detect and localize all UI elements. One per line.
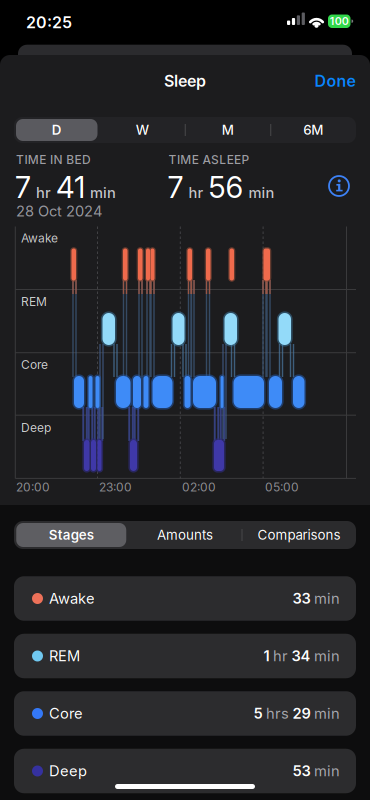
staticText: Awake	[21, 231, 58, 245]
staticText: 5	[253, 705, 262, 722]
button[interactable]: Comparisons	[242, 521, 356, 549]
staticText: TIME ASLEEP	[168, 152, 249, 167]
staticText: Sleep	[164, 72, 206, 90]
button[interactable]: REM	[14, 634, 356, 678]
staticText: Deep	[49, 762, 87, 780]
staticText: Done	[314, 72, 355, 90]
staticText: TIME IN BED	[16, 152, 91, 167]
staticText: 34	[291, 647, 310, 665]
staticText: hr	[36, 184, 51, 201]
staticText: 41	[56, 170, 85, 205]
button[interactable]: W	[99, 117, 185, 143]
staticText: 53	[292, 762, 310, 780]
staticText: min	[314, 647, 340, 665]
staticText: Comparisons	[257, 527, 340, 543]
staticText: D	[52, 122, 62, 138]
button[interactable]: 6M	[270, 117, 356, 143]
staticText: hrs	[266, 705, 289, 722]
staticText: hr	[188, 184, 203, 201]
staticText: min	[90, 184, 116, 201]
staticText: hr	[273, 647, 288, 665]
staticText: 20:25	[26, 13, 72, 32]
staticText: 20:00	[16, 480, 50, 494]
staticText: 56	[208, 170, 243, 205]
staticText: Core	[21, 357, 48, 372]
staticText: min	[314, 705, 340, 722]
staticText: 7	[167, 170, 183, 205]
button[interactable]: Awake	[14, 576, 356, 621]
staticText: Amounts	[157, 527, 213, 543]
staticText: M	[222, 122, 234, 138]
staticText: Stages	[49, 527, 94, 543]
staticText: REM	[49, 647, 80, 665]
button[interactable]: Amounts	[128, 521, 242, 549]
staticText: 29	[292, 705, 310, 722]
staticText: min	[248, 184, 274, 201]
button[interactable]: Core	[14, 691, 356, 736]
staticText: 7	[15, 170, 31, 205]
staticText: min	[314, 762, 340, 780]
button[interactable]: Deep	[14, 749, 356, 793]
button[interactable]: Done	[305, 66, 365, 96]
staticText: REM	[21, 294, 47, 309]
button[interactable]: M	[185, 117, 270, 143]
staticText: 02:00	[182, 480, 216, 494]
button[interactable]	[328, 175, 350, 197]
staticText: Core	[49, 705, 83, 722]
staticText: 23:00	[99, 480, 132, 494]
staticText: 6M	[303, 122, 323, 138]
staticText: Deep	[21, 420, 51, 435]
staticText: 05:00	[265, 480, 299, 494]
button[interactable]: D	[14, 117, 99, 143]
staticText: 33	[292, 590, 310, 607]
staticText: 1	[263, 647, 269, 665]
button[interactable]: Stages	[14, 521, 128, 549]
staticText: W	[136, 122, 149, 138]
staticText: min	[314, 590, 340, 607]
staticText: Awake	[49, 590, 95, 607]
staticText: 28 Oct 2024	[16, 202, 102, 220]
staticText: 100	[330, 15, 349, 27]
